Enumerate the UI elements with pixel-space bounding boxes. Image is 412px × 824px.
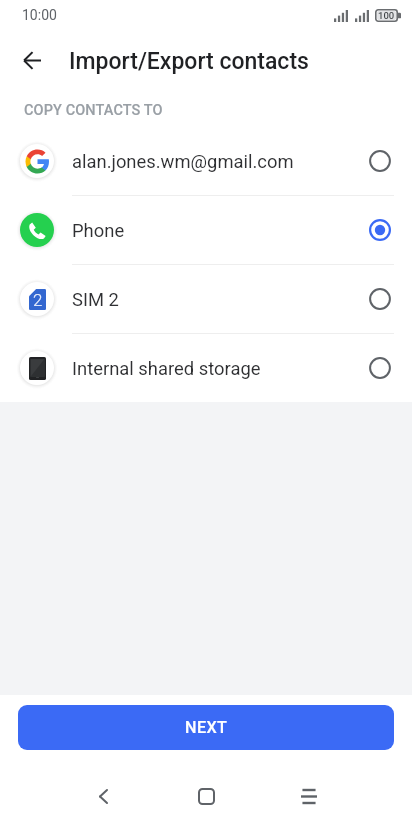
button[interactable]: Back [11, 39, 53, 81]
button[interactable]: 2 [0, 264, 412, 333]
button[interactable]: Recent apps [281, 768, 337, 824]
button[interactable]: Internal shared storage [0, 333, 412, 402]
staticText: Phone [72, 220, 369, 242]
staticText: Import/Export contacts [69, 48, 309, 75]
staticText: 100 [378, 10, 395, 21]
button[interactable]: alan.jones.wm@gmail.com [0, 126, 412, 195]
button[interactable]: Phone [0, 195, 412, 264]
button[interactable]: Back [75, 768, 131, 824]
button[interactable]: NEXT [18, 705, 394, 750]
staticText: 10:00 [22, 7, 57, 23]
staticText: alan.jones.wm@gmail.com [72, 151, 369, 173]
staticText: SIM 2 [72, 289, 369, 311]
staticText: COPY CONTACTS TO [24, 102, 163, 119]
button[interactable]: Home [178, 768, 234, 824]
staticText: 2 [33, 290, 43, 310]
staticText: NEXT [185, 718, 228, 737]
staticText: Internal shared storage [72, 358, 369, 380]
